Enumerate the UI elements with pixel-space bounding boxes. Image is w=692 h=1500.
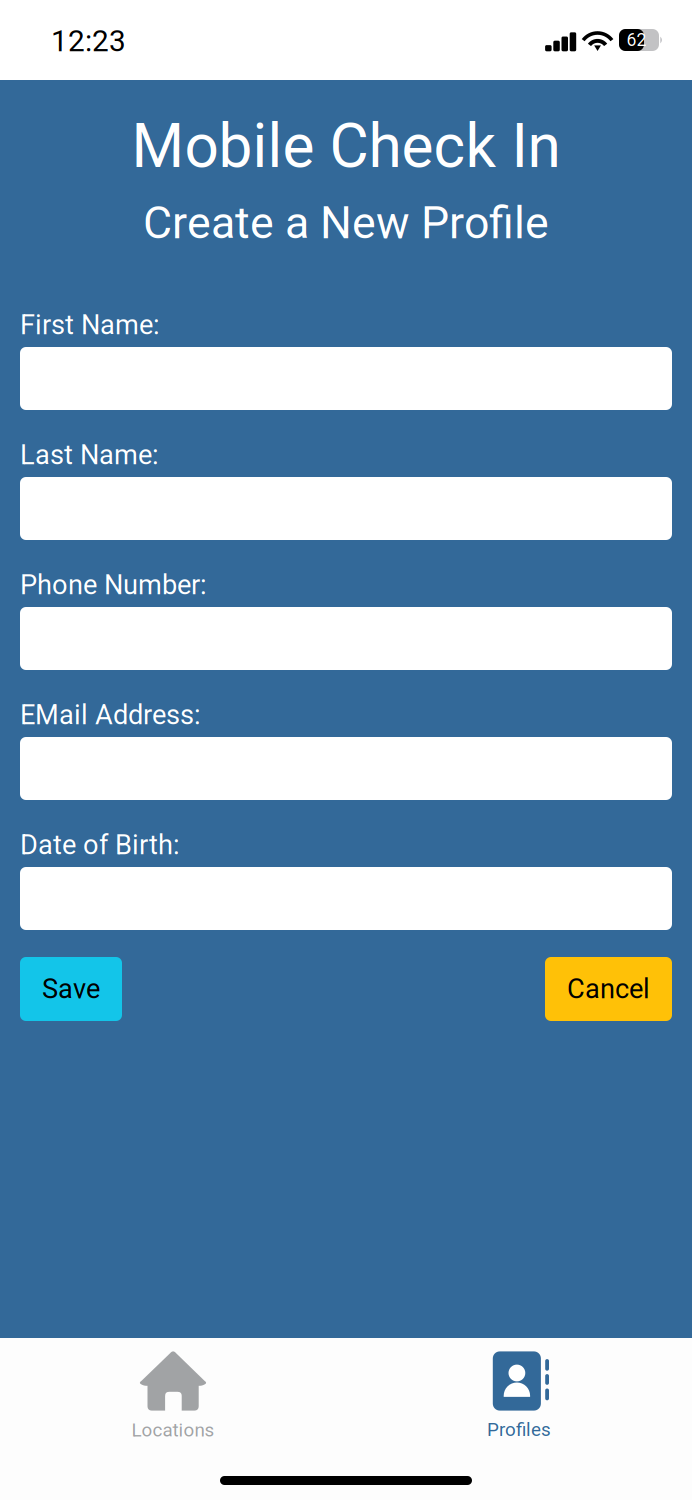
button[interactable]: EMail Address:: [20, 730, 672, 800]
staticText: Profiles: [487, 1419, 551, 1441]
button[interactable]: Phone Number:: [20, 600, 672, 670]
button[interactable]: First Name:: [20, 340, 672, 410]
button[interactable]: Save: [20, 957, 122, 1021]
button[interactable]: Date of Birth:: [20, 860, 672, 930]
button[interactable]: Cancel: [545, 957, 672, 1021]
staticText: Last Name:: [20, 439, 159, 471]
staticText: Save: [42, 973, 100, 1005]
staticText: Phone Number:: [20, 569, 207, 601]
staticText: EMail Address:: [20, 699, 201, 731]
staticText: Locations: [131, 1419, 214, 1441]
staticText: Create a New Profile: [143, 197, 549, 249]
staticText: 62: [627, 30, 647, 50]
button[interactable]: Last Name:: [20, 470, 672, 540]
staticText: Mobile Check In: [131, 111, 560, 182]
button[interactable]: Locations: [0, 1351, 346, 1441]
staticText: Date of Birth:: [20, 829, 180, 861]
button[interactable]: Profiles: [346, 1351, 692, 1441]
staticText: First Name:: [20, 309, 160, 341]
staticText: Cancel: [567, 973, 650, 1005]
staticText: 12:23: [51, 24, 126, 58]
